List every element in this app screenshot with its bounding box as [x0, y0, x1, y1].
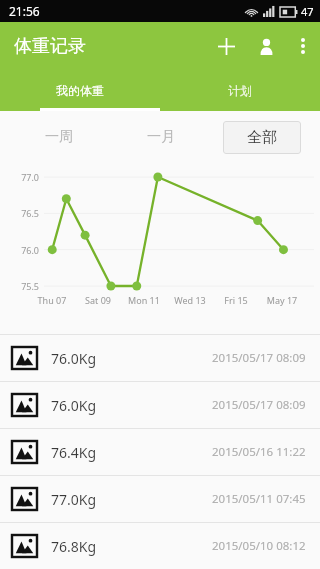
- staticText: 全部: [247, 128, 277, 147]
- staticText: 2015/05/11 07:45: [212, 491, 306, 507]
- staticText: 计划: [228, 83, 252, 98]
- staticText: Sat 09: [78, 294, 118, 306]
- button[interactable]: 一月: [110, 111, 211, 163]
- staticText: 体重记录: [14, 35, 86, 58]
- button[interactable]: 77.0Kg: [0, 476, 320, 522]
- button[interactable]: Add: [206, 22, 246, 70]
- staticText: Fri 15: [216, 294, 256, 306]
- staticText: 76.5: [0, 207, 39, 219]
- staticText: Wed 13: [170, 294, 210, 306]
- button[interactable]: 76.0Kg: [0, 382, 320, 428]
- staticText: 76.4Kg: [51, 443, 97, 462]
- staticText: 21:56: [9, 3, 40, 19]
- staticText: 77.0Kg: [51, 490, 97, 509]
- staticText: Mon 11: [124, 294, 164, 306]
- staticText: 76.0Kg: [51, 349, 97, 368]
- staticText: 76.0Kg: [51, 396, 97, 415]
- button[interactable]: 76.8Kg: [0, 523, 320, 569]
- staticText: 2015/05/16 11:22: [212, 444, 306, 460]
- staticText: Thu 07: [32, 294, 72, 306]
- button[interactable]: 全部: [223, 121, 301, 154]
- staticText: 2015/05/17 08:09: [212, 397, 306, 413]
- button[interactable]: 76.4Kg: [0, 429, 320, 475]
- button[interactable]: 我的体重: [0, 70, 160, 111]
- staticText: 我的体重: [56, 83, 104, 98]
- button[interactable]: 76.0Kg: [0, 335, 320, 381]
- staticText: 一月: [147, 128, 175, 146]
- staticText: 一周: [45, 128, 73, 146]
- button[interactable]: 计划: [160, 70, 320, 111]
- button[interactable]: 一周: [8, 111, 110, 163]
- button[interactable]: Account: [246, 22, 286, 70]
- staticText: 76.0: [0, 244, 39, 256]
- staticText: 76.8Kg: [51, 537, 97, 556]
- staticText: 75.5: [0, 280, 39, 292]
- staticText: 47: [301, 4, 314, 19]
- staticText: 2015/05/10 08:12: [212, 538, 306, 554]
- staticText: 77.0: [0, 171, 39, 183]
- button[interactable]: More options: [286, 22, 320, 70]
- staticText: 2015/05/17 08:09: [212, 350, 306, 366]
- staticText: May 17: [262, 294, 302, 306]
